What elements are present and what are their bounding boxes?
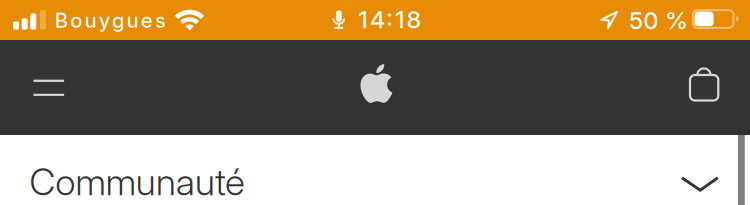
button[interactable]: Communauté (0, 135, 750, 205)
button[interactable]: Menu (22, 64, 74, 111)
button[interactable]: Shopping Bag (678, 60, 732, 114)
button[interactable]: Apple (349, 56, 403, 110)
staticText: 50 % (629, 6, 694, 35)
staticText: Communauté (29, 160, 253, 204)
staticText: Bouygues (55, 8, 173, 33)
staticText: 14:18 (358, 5, 429, 34)
